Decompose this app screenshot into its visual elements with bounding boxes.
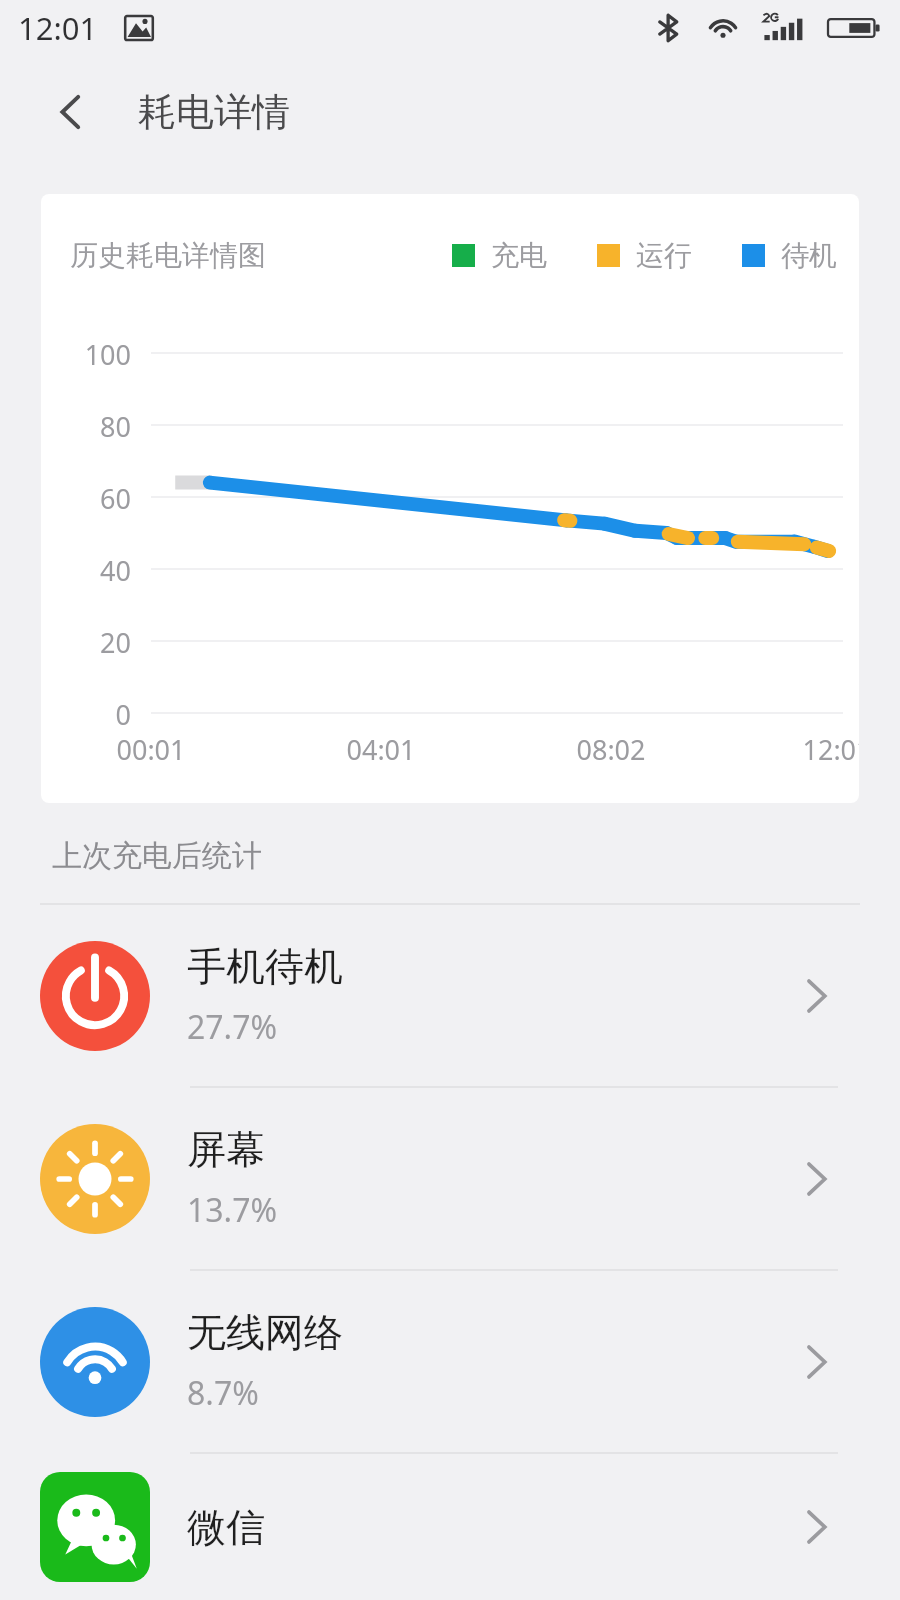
staticText: 无线网络 <box>187 1308 343 1357</box>
button[interactable]: 无线网络 <box>0 1271 900 1452</box>
staticText: 20 <box>55 624 131 661</box>
staticText: 60 <box>55 480 131 517</box>
staticText: 27.7% <box>187 1005 278 1049</box>
staticText: 上次充电后统计 <box>52 837 262 875</box>
button[interactable]: 微信 <box>0 1454 900 1600</box>
button[interactable]: Back <box>34 75 108 149</box>
staticText: 00:01 <box>94 731 208 768</box>
staticText: 屏幕 <box>187 1125 265 1174</box>
staticText: 待机 <box>781 238 837 273</box>
staticText: 历史耗电详情图 <box>70 238 266 273</box>
staticText: 8.7% <box>187 1371 259 1415</box>
staticText: 微信 <box>187 1503 265 1552</box>
button[interactable]: 手机待机 <box>0 905 900 1086</box>
button[interactable]: 屏幕 <box>0 1088 900 1269</box>
staticText: 运行 <box>636 238 692 273</box>
staticText: 08:02 <box>554 731 668 768</box>
staticText: 80 <box>55 408 131 445</box>
staticText: 0 <box>55 696 131 733</box>
staticText: 充电 <box>491 238 547 273</box>
staticText: 100 <box>55 336 131 373</box>
staticText: 手机待机 <box>187 942 343 991</box>
staticText: 40 <box>55 552 131 589</box>
staticText: 04:01 <box>324 731 438 768</box>
staticText: 12:01 <box>18 7 98 49</box>
staticText: 12:01 <box>780 731 859 768</box>
staticText: 耗电详情 <box>138 88 290 136</box>
staticText: 13.7% <box>187 1188 278 1232</box>
